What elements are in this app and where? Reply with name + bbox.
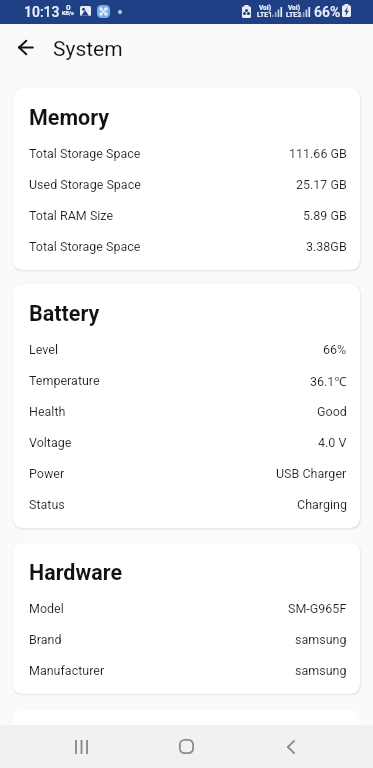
staticText: 66% — [323, 342, 347, 357]
staticText: Hardware — [29, 560, 123, 585]
staticText: Level — [29, 342, 58, 357]
button[interactable]: Manufacturer — [13, 663, 360, 694]
staticText: 5.89 GB — [303, 208, 347, 223]
staticText: samsung — [295, 663, 347, 678]
staticText: Charging — [297, 497, 347, 512]
staticText: Brand — [29, 632, 62, 647]
staticText: 0 — [66, 3, 71, 12]
staticText: 36.1℃ — [310, 373, 347, 390]
staticText: KB/s — [62, 10, 74, 16]
staticText: Power — [29, 466, 65, 481]
staticText: Good — [317, 404, 347, 419]
staticText: 111.66 GB — [289, 146, 347, 161]
staticText: USB Charger — [276, 466, 347, 481]
staticText: System — [53, 37, 123, 62]
staticText: Status — [29, 497, 65, 512]
button[interactable]: Home — [144, 725, 228, 768]
staticText: VoI) — [288, 4, 300, 12]
staticText: Voltage — [29, 435, 72, 450]
staticText: LTE1 — [257, 11, 273, 19]
button[interactable]: Total Storage Space — [13, 239, 360, 270]
staticText: 10:13 — [24, 4, 60, 20]
staticText: Memory — [29, 105, 110, 130]
button[interactable]: Status — [13, 497, 360, 528]
staticText: 66% — [314, 4, 341, 20]
staticText: 3.38GB — [306, 239, 347, 254]
staticText: Health — [29, 404, 66, 419]
button[interactable]: Health — [13, 404, 360, 435]
staticText: 25.17 GB — [296, 177, 347, 192]
button[interactable]: Navigate up — [3, 24, 47, 88]
button[interactable]: Total RAM Size — [13, 208, 360, 239]
button[interactable]: Back — [249, 725, 333, 768]
staticText: Total Storage Space — [29, 146, 141, 161]
button[interactable]: Voltage — [13, 435, 360, 466]
staticText: LTE2 — [286, 11, 302, 19]
button[interactable]: Temperature — [13, 373, 360, 404]
button[interactable]: Used Storage Space — [13, 177, 360, 208]
staticText: Battery — [29, 301, 100, 326]
staticText: Total RAM Size — [29, 208, 114, 223]
button[interactable]: Recent apps — [39, 725, 123, 768]
staticText: Total Storage Space — [29, 239, 141, 254]
button[interactable]: Level — [13, 342, 360, 373]
button[interactable]: Power — [13, 466, 360, 497]
button[interactable]: Model — [13, 601, 360, 632]
staticText: Model — [29, 601, 64, 616]
staticText: SM-G965F — [288, 601, 347, 616]
button[interactable]: Brand — [13, 632, 360, 663]
staticText: samsung — [295, 632, 347, 647]
staticText: Used Storage Space — [29, 177, 141, 192]
button[interactable]: Total Storage Space — [13, 146, 360, 177]
staticText: Manufacturer — [29, 663, 105, 678]
staticText: 4.0 V — [318, 435, 347, 450]
staticText: Temperature — [29, 373, 100, 388]
staticText: VoI) — [259, 4, 271, 12]
